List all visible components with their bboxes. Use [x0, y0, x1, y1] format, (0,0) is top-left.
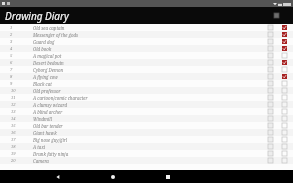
staticText: 11 — [11, 95, 16, 101]
button[interactable]: Select all — [271, 10, 282, 21]
button[interactable]: Toggle done — [281, 45, 288, 52]
button[interactable]: Toggle done — [281, 52, 288, 59]
button[interactable]: Toggle drawn — [267, 38, 274, 45]
staticText: Old sea captain — [33, 25, 267, 31]
staticText: A taxi — [33, 144, 267, 150]
button[interactable]: 13 — [0, 108, 293, 115]
button[interactable]: 18 — [0, 143, 293, 150]
button[interactable]: Toggle done — [281, 157, 288, 164]
button[interactable]: Toggle done — [281, 66, 288, 73]
button[interactable]: Toggle done — [281, 73, 288, 80]
button[interactable]: 1 — [0, 24, 293, 31]
button[interactable]: Toggle done — [281, 101, 288, 108]
staticText: Big nose guy/girl — [33, 137, 267, 143]
button[interactable]: Toggle done — [281, 87, 288, 94]
staticText: 17 — [11, 137, 16, 143]
staticText: 2 — [10, 32, 13, 38]
staticText: Cyborg Demon — [33, 67, 267, 73]
staticText: Messenger of the gods — [33, 32, 267, 38]
staticText: Guard dog — [33, 39, 267, 45]
button[interactable]: 2 — [0, 31, 293, 38]
button[interactable]: Home — [107, 171, 118, 182]
button[interactable]: Toggle done — [281, 31, 288, 38]
staticText: 18 — [11, 144, 16, 150]
staticText: 3 — [10, 39, 13, 45]
button[interactable]: Toggle done — [281, 94, 288, 101]
staticText: A blind archer — [33, 109, 267, 115]
button[interactable]: Toggle drawn — [267, 157, 274, 164]
button[interactable]: Toggle drawn — [267, 52, 274, 59]
button[interactable]: Toggle done — [281, 38, 288, 45]
staticText: A magical pot — [33, 53, 267, 59]
staticText: 14 — [11, 116, 16, 122]
button[interactable]: Toggle drawn — [267, 129, 274, 136]
staticText: 8 — [10, 74, 13, 80]
staticText: 6 — [10, 60, 13, 66]
button[interactable]: Toggle drawn — [267, 66, 274, 73]
staticText: A flying cow — [33, 74, 267, 80]
button[interactable]: 4 — [0, 45, 293, 52]
button[interactable]: Toggle drawn — [267, 45, 274, 52]
button[interactable]: Toggle drawn — [267, 31, 274, 38]
button[interactable]: 7 — [0, 66, 293, 73]
staticText: A cartoon/comic character — [33, 95, 267, 101]
button[interactable]: 8 — [0, 73, 293, 80]
button[interactable]: Toggle drawn — [267, 80, 274, 87]
button[interactable]: Toggle done — [281, 143, 288, 150]
staticText: A clumsy wizard — [33, 102, 267, 108]
button[interactable]: 16 — [0, 129, 293, 136]
button[interactable]: 3 — [0, 38, 293, 45]
button[interactable]: Toggle done — [281, 122, 288, 129]
button[interactable]: Toggle drawn — [267, 143, 274, 150]
staticText: 9 — [10, 81, 13, 87]
button[interactable]: Toggle done — [281, 115, 288, 122]
button[interactable]: Toggle done — [281, 136, 288, 143]
button[interactable]: Back — [52, 171, 63, 182]
staticText: Windmill — [33, 116, 267, 122]
staticText: Drawing Diary — [5, 9, 69, 23]
staticText: Black cat — [33, 81, 267, 87]
staticText: 10 — [11, 88, 16, 94]
staticText: Old professor — [33, 88, 267, 94]
button[interactable]: Toggle done — [281, 80, 288, 87]
staticText: 13 — [11, 109, 16, 115]
staticText: Drunk fatty ninja — [33, 151, 267, 157]
button[interactable]: 5 — [0, 52, 293, 59]
button[interactable]: 15 — [0, 122, 293, 129]
staticText: Old bar tender — [33, 123, 267, 129]
button[interactable]: Recents — [162, 171, 173, 182]
button[interactable]: Toggle done — [281, 150, 288, 157]
button[interactable]: 10 — [0, 87, 293, 94]
button[interactable]: Toggle done — [281, 24, 288, 31]
button[interactable]: Toggle drawn — [267, 122, 274, 129]
button[interactable]: 11 — [0, 94, 293, 101]
button[interactable]: 9 — [0, 80, 293, 87]
button[interactable]: 6 — [0, 59, 293, 66]
button[interactable]: Toggle drawn — [267, 136, 274, 143]
staticText: 4 — [10, 46, 13, 52]
button[interactable]: 19 — [0, 150, 293, 157]
button[interactable]: Toggle drawn — [267, 108, 274, 115]
staticText: 12 — [11, 102, 16, 108]
button[interactable]: Toggle drawn — [267, 150, 274, 157]
button[interactable]: Toggle drawn — [267, 101, 274, 108]
button[interactable]: Toggle drawn — [267, 24, 274, 31]
button[interactable]: 17 — [0, 136, 293, 143]
button[interactable]: 20 — [0, 157, 293, 164]
button[interactable]: Toggle drawn — [267, 115, 274, 122]
staticText: 20 — [11, 158, 16, 164]
staticText: 7 — [10, 67, 13, 73]
button[interactable]: 14 — [0, 115, 293, 122]
staticText: 5 — [10, 53, 13, 59]
staticText: Camera — [33, 158, 267, 164]
button[interactable]: Toggle drawn — [267, 94, 274, 101]
button[interactable]: 12 — [0, 101, 293, 108]
button[interactable]: Toggle done — [281, 129, 288, 136]
staticText: 1 — [10, 25, 13, 31]
staticText: 19 — [11, 151, 16, 157]
button[interactable]: Toggle drawn — [267, 73, 274, 80]
button[interactable]: Toggle drawn — [267, 59, 274, 66]
button[interactable]: Toggle drawn — [267, 87, 274, 94]
button[interactable]: Toggle done — [281, 59, 288, 66]
button[interactable]: Toggle done — [281, 108, 288, 115]
